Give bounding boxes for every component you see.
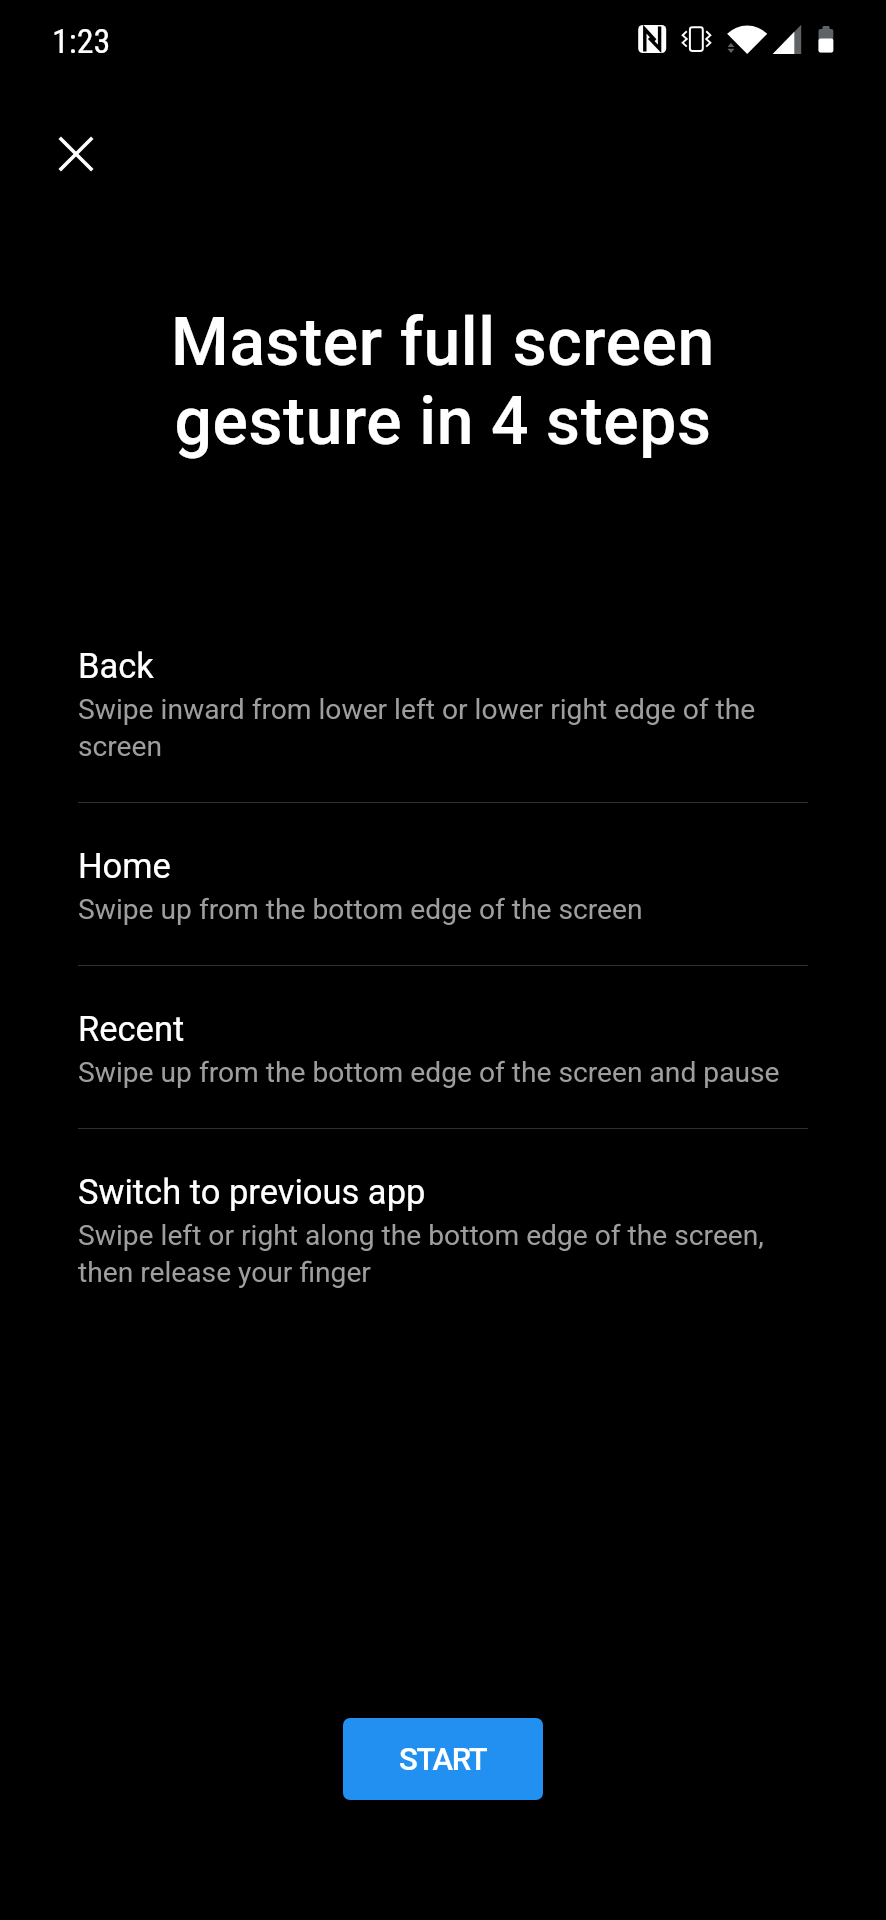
button[interactable]: Home <box>78 803 808 965</box>
staticText: Switch to previous app <box>78 1172 426 1212</box>
staticText: Swipe up from the bottom edge of the scr… <box>78 1056 780 1089</box>
staticText: Recent <box>78 1009 185 1049</box>
staticText: 1:23 <box>52 21 111 61</box>
button[interactable]: Back <box>78 603 808 802</box>
staticText: Master full screen gesture in 4 steps <box>40 304 846 460</box>
button[interactable]: START <box>343 1718 543 1800</box>
staticText: Back <box>78 646 154 686</box>
button[interactable]: Close <box>44 122 108 186</box>
staticText: Swipe inward from lower left or lower ri… <box>78 693 808 763</box>
staticText: START <box>399 1741 487 1777</box>
button[interactable]: Switch to previous app <box>78 1129 808 1328</box>
button[interactable]: Recent <box>78 966 808 1128</box>
staticText: Swipe up from the bottom edge of the scr… <box>78 893 643 926</box>
staticText: Swipe left or right along the bottom edg… <box>78 1219 808 1289</box>
staticText: Home <box>78 846 171 886</box>
